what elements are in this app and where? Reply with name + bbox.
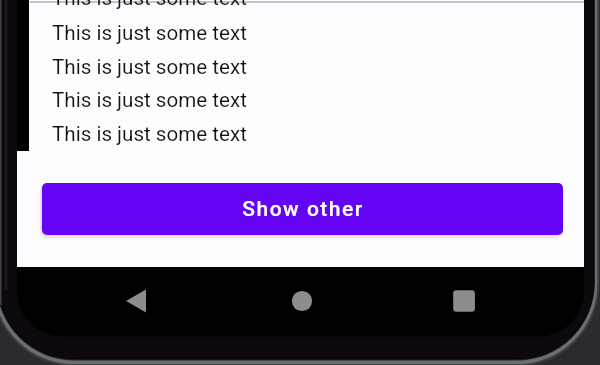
button[interactable]: Home (274, 273, 330, 329)
button[interactable]: This is just some text (52, 86, 312, 114)
staticText: Show other (242, 197, 364, 222)
button[interactable]: Back (108, 273, 164, 329)
staticText: This is just some text (52, 122, 247, 146)
staticText: This is just some text (52, 21, 247, 45)
staticText: This is just some text (52, 0, 247, 10)
staticText: This is just some text (52, 88, 247, 112)
button[interactable]: This is just some text (52, 19, 312, 47)
button[interactable]: This is just some text (52, 53, 312, 81)
staticText: This is just some text (52, 55, 247, 79)
button[interactable]: This is just some text (52, 0, 312, 12)
button[interactable]: Show other (42, 183, 563, 235)
button[interactable]: This is just some text (52, 120, 312, 148)
button[interactable]: Recent apps (436, 273, 492, 329)
